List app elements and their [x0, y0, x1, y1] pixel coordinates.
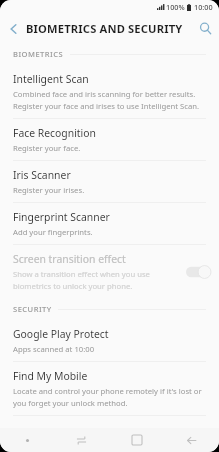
button[interactable]: Fingerprint Scanner [0, 203, 219, 245]
staticText: Iris Scanner [13, 168, 71, 182]
button[interactable]: Intelligent Scan [0, 65, 219, 119]
staticText: Fingerprint Scanner [13, 210, 110, 224]
staticText: Register your irises. [13, 185, 85, 195]
button[interactable]: Screen transition effect [186, 265, 211, 279]
staticText: Locate and control your phone remotely i… [13, 386, 206, 396]
staticText: Register your face and irises to use Int… [13, 101, 200, 111]
button[interactable]: Iris Scanner [0, 161, 219, 203]
button[interactable]: Face Recognition [0, 119, 219, 161]
button[interactable]: Screen transition effect [0, 245, 219, 298]
staticText: Screen transition effect [13, 252, 126, 266]
staticText: SECURITY [13, 304, 52, 314]
staticText: Find My Mobile [13, 369, 88, 383]
button[interactable]: Search [191, 14, 219, 43]
staticText: Intelligent Scan [13, 72, 89, 86]
button[interactable]: Home [109, 428, 164, 452]
staticText: BIOMETRICS [13, 49, 64, 59]
staticText: you forget your unlock method. [13, 398, 128, 408]
staticText: 10:00 [194, 2, 213, 12]
staticText: Apps scanned at 10:00 [13, 344, 95, 354]
button[interactable]: Menu [0, 428, 54, 452]
staticText: Add your fingerprints. [13, 227, 93, 237]
staticText: BIOMETRICS AND SECURITY [26, 21, 183, 36]
staticText: biometrics to unlock your phone. [13, 281, 133, 291]
staticText: Register your face. [13, 143, 81, 153]
staticText: Show a transition effect when you use [13, 269, 150, 279]
button[interactable]: Google Play Protect [0, 320, 219, 362]
staticText: Face Recognition [13, 126, 96, 140]
staticText: Combined face and iris scanning for bett… [13, 89, 196, 99]
staticText: Google Play Protect [13, 327, 109, 341]
button[interactable]: Back [0, 14, 26, 43]
button[interactable]: Back [164, 428, 219, 452]
button[interactable]: Recent apps [54, 428, 109, 452]
staticText: 100% [166, 2, 185, 12]
button[interactable]: Find My Mobile [0, 362, 219, 416]
